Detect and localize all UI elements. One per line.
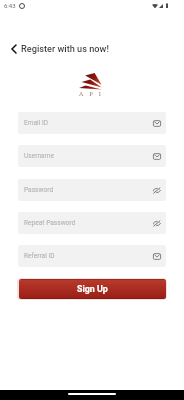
staticText: Register with us now! (21, 43, 109, 54)
staticText: Email ID (24, 119, 49, 127)
button[interactable]: Password (18, 179, 166, 201)
button[interactable]: Repeat Password (18, 212, 166, 234)
button[interactable]: Username (18, 145, 166, 167)
staticText: Password (24, 186, 54, 194)
button[interactable]: Email ID (18, 112, 166, 134)
staticText: Referral ID (24, 252, 55, 260)
button[interactable]: Sign Up (19, 279, 166, 299)
button[interactable]: Referral ID (18, 245, 166, 267)
staticText: 6:43 (4, 2, 16, 9)
staticText: Sign Up (77, 284, 108, 294)
staticText: Repeat Password (24, 219, 76, 227)
staticText: Username (24, 152, 54, 160)
button[interactable]: Back (7, 42, 20, 55)
staticText: A P I (79, 90, 104, 98)
